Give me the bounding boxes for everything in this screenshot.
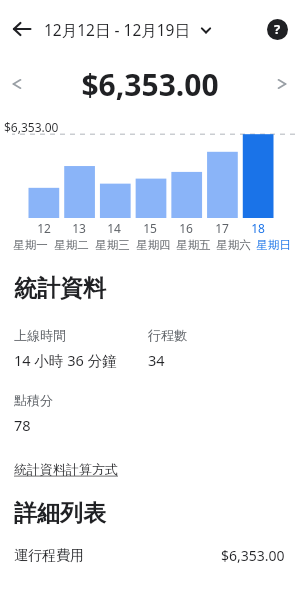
- staticText: 上線時間: [14, 327, 66, 343]
- staticText: 15: [143, 220, 157, 236]
- staticText: 星期一: [13, 238, 48, 252]
- button[interactable]: 統計資料計算方式: [14, 461, 118, 477]
- staticText: $6,353.00: [4, 119, 59, 135]
- staticText: 統計資料計算方式: [14, 461, 118, 477]
- staticText: 16: [179, 220, 193, 236]
- staticText: 詳細列表: [14, 499, 106, 528]
- staticText: 18: [251, 220, 265, 236]
- staticText: 34: [148, 350, 165, 370]
- staticText: 14: [107, 220, 121, 236]
- staticText: 12月12日 - 12月19日: [44, 19, 190, 40]
- staticText: 78: [14, 415, 31, 435]
- staticText: 17: [215, 220, 229, 236]
- button[interactable]: Next week: [265, 67, 299, 101]
- staticText: 星期六: [216, 238, 251, 252]
- staticText: $6,353.00: [81, 64, 219, 105]
- staticText: 統計資料: [14, 274, 106, 303]
- staticText: 星期日: [256, 238, 291, 252]
- staticText: 行程數: [148, 327, 187, 343]
- staticText: 運行程費用: [14, 547, 84, 565]
- staticText: 星期二: [54, 238, 89, 252]
- staticText: 星期三: [95, 238, 130, 252]
- button[interactable]: 12月12日 - 12月19日: [44, 19, 255, 40]
- button[interactable]: Back: [0, 7, 44, 51]
- staticText: 14 小時 36 分鐘: [14, 350, 117, 370]
- button[interactable]: Previous week: [0, 67, 34, 101]
- button[interactable]: Help: [255, 7, 299, 51]
- staticText: 13: [72, 220, 86, 236]
- staticText: 12: [37, 220, 51, 236]
- staticText: ?: [274, 20, 281, 38]
- staticText: 點積分: [14, 392, 53, 408]
- staticText: $6,353.00: [221, 546, 285, 565]
- staticText: 星期五: [176, 238, 211, 252]
- staticText: 星期四: [136, 238, 171, 252]
